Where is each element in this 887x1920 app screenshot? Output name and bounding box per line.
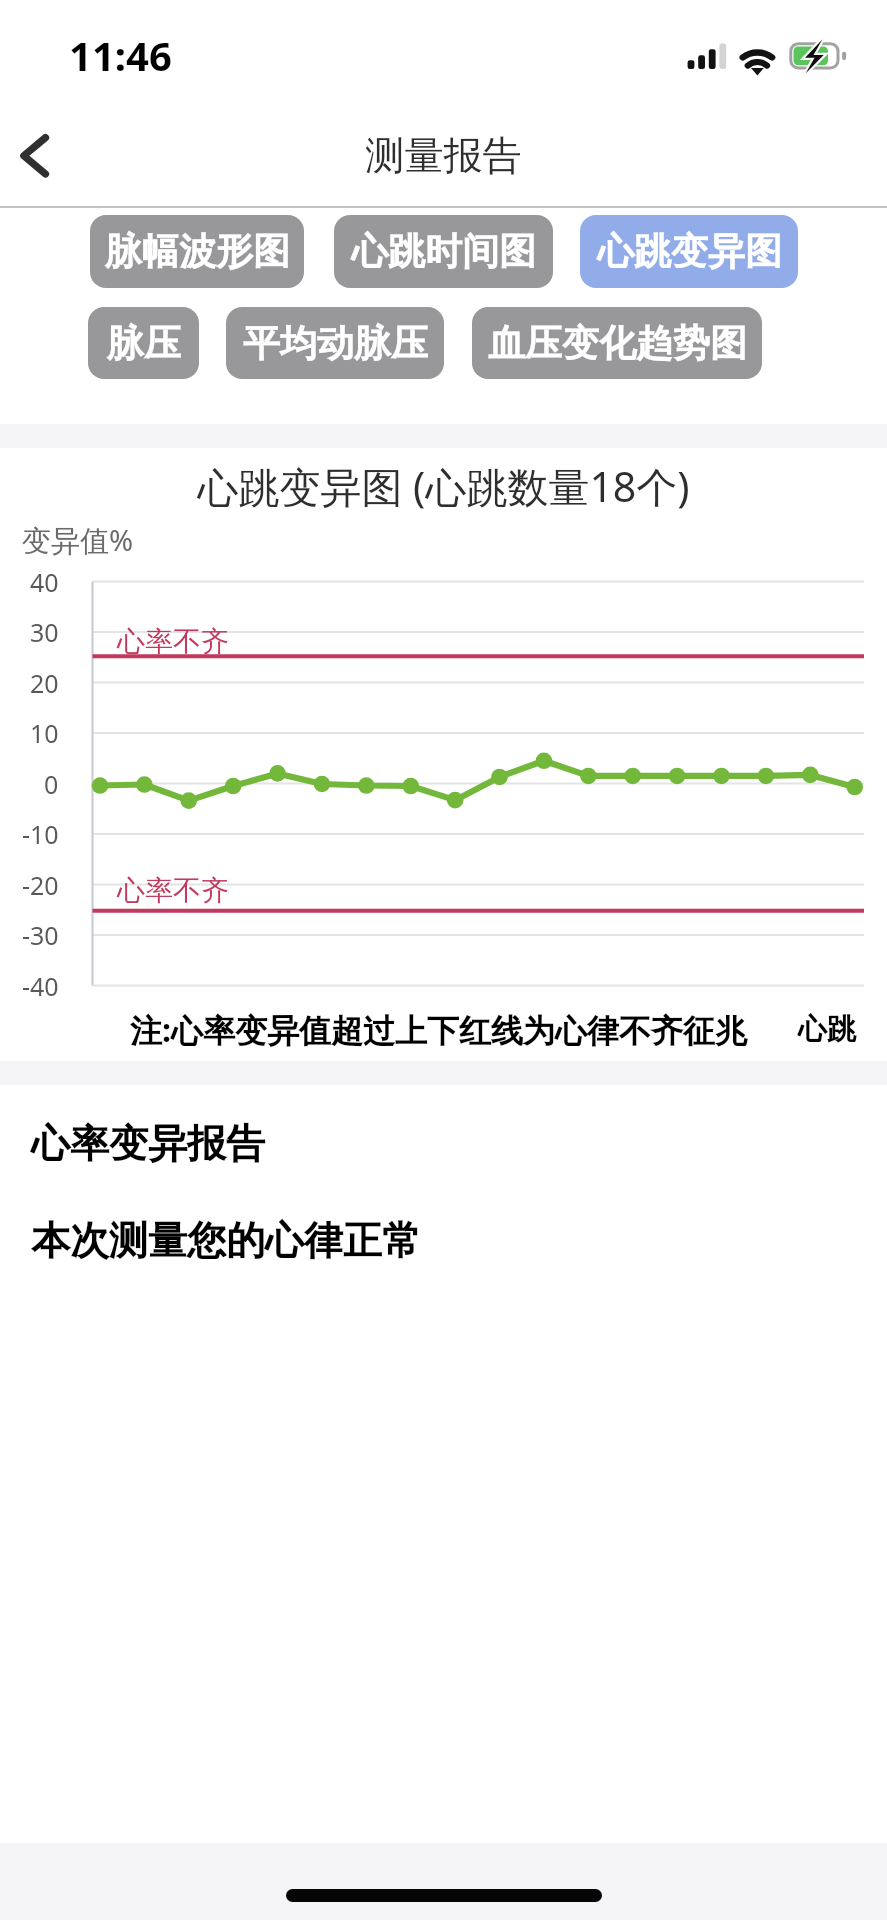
button[interactable]: 平均动脉压 [226,307,444,379]
staticText: 心跳 [798,1011,856,1048]
button[interactable]: 心跳变异图 [580,215,798,288]
staticText: 心率不齐 [117,873,229,908]
staticText: 心率不齐 [117,624,229,659]
staticText: 心跳时间图 [351,228,536,275]
staticText: 注:心率变异值超过上下红线为心律不齐征兆 [130,1008,747,1052]
staticText: 测量报告 [0,131,887,180]
staticText: 本次测量您的心律正常 [31,1216,421,1265]
staticText: 血压变化趋势图 [488,320,747,367]
staticText: 11:46 [69,28,172,82]
staticText: 心跳变异图 (心跳数量18个) [0,458,887,514]
staticText: 30 [30,615,59,649]
staticText: -20 [22,868,59,902]
button[interactable]: Back [0,110,90,204]
staticText: 变异值% [22,520,134,560]
button[interactable]: 脉压 [88,307,199,379]
staticText: 0 [44,767,59,801]
staticText: 20 [30,666,59,700]
staticText: 40 [30,565,59,599]
button[interactable]: 血压变化趋势图 [472,307,762,379]
staticText: -10 [22,817,59,851]
button[interactable]: 心跳时间图 [334,215,553,288]
staticText: -30 [22,918,59,952]
staticText: 心跳变异图 [597,228,782,275]
staticText: 脉幅波形图 [105,228,290,275]
staticText: 心率变异报告 [31,1119,265,1168]
staticText: -40 [22,969,59,1003]
staticText: 10 [30,716,59,750]
staticText: 脉压 [107,320,181,367]
staticText: 平均动脉压 [243,320,428,367]
button[interactable]: 脉幅波形图 [90,215,304,288]
